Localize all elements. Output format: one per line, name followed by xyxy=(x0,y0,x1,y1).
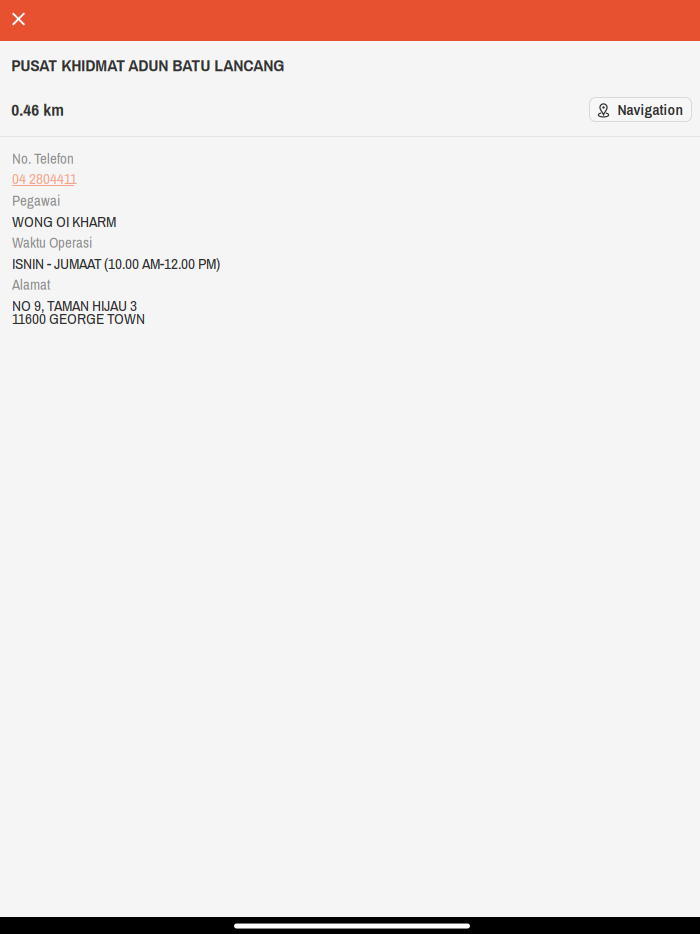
staticText: NO 9, TAMAN HIJAU 3 xyxy=(12,295,137,316)
staticText: 11600 GEORGE TOWN xyxy=(12,308,145,329)
staticText: Alamat xyxy=(12,274,50,294)
staticText: ISNIN - JUMAAT (10.00 AM-12.00 PM) xyxy=(12,253,220,274)
staticText: Pegawai xyxy=(12,190,60,210)
staticText: PUSAT KHIDMAT ADUN BATU LANCANG xyxy=(11,53,284,77)
staticText: Waktu Operasi xyxy=(12,232,92,252)
button[interactable]: 04 2804411 xyxy=(12,169,700,190)
staticText: 04 2804411 xyxy=(12,168,77,189)
button[interactable]: Close xyxy=(0,0,37,41)
staticText: WONG OI KHARM xyxy=(12,211,116,232)
button[interactable]: Navigation xyxy=(589,97,691,121)
staticText: Navigation xyxy=(617,99,683,120)
staticText: No. Telefon xyxy=(12,148,74,168)
staticText: 0.46 km xyxy=(11,98,64,121)
